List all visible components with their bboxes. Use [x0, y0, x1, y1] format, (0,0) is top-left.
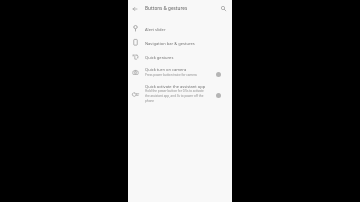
button[interactable]: Quick activate the assistant app: [128, 81, 232, 103]
button[interactable]: Navigation bar & gestures: [128, 37, 232, 51]
staticText: Hold the power button for 0.5s to activa…: [145, 89, 208, 103]
button[interactable]: Search: [217, 3, 229, 14]
button[interactable]: Back: [129, 3, 141, 14]
button[interactable]: Buttons & gestures: [145, 5, 188, 11]
staticText: Quick activate the assistant app: [145, 84, 206, 90]
button[interactable]: Toggle Quick activate the assistant app: [213, 91, 224, 100]
staticText: Alert slider: [145, 27, 166, 33]
button[interactable]: Quick turn on camera: [128, 64, 232, 86]
staticText: Navigation bar & gestures: [145, 41, 195, 47]
button[interactable]: Toggle Quick turn on camera: [213, 70, 224, 79]
staticText: Quick gestures: [145, 55, 174, 61]
button[interactable]: Alert slider: [128, 23, 232, 37]
staticText: Quick turn on camera: [145, 67, 187, 73]
staticText: Press power button twice for camera: [145, 73, 208, 77]
button[interactable]: Quick gestures: [128, 51, 232, 65]
